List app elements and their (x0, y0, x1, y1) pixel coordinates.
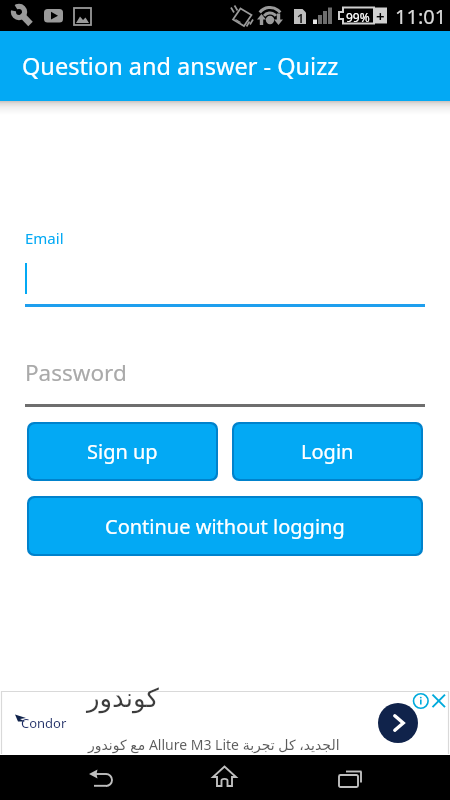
button[interactable]: Back (62, 755, 137, 800)
staticText: كوندور (87, 683, 159, 713)
staticText: Sign up (87, 438, 158, 465)
staticText: مع كوندور Allure M3 Lite الجديد، كل تجرب… (88, 735, 340, 754)
button[interactable]: Close ad (430, 692, 448, 710)
button[interactable]: Sign up (29, 424, 216, 479)
button[interactable] (1, 691, 449, 754)
button[interactable]: Home (187, 755, 262, 800)
button[interactable]: Continue without logging (29, 498, 421, 554)
button[interactable]: Ad information (412, 692, 430, 710)
staticText: Login (301, 438, 354, 465)
staticText: Continue without logging (105, 513, 345, 540)
staticText: 1 (297, 10, 304, 26)
staticText: Question and answer - Quizz (22, 50, 339, 82)
staticText: Condor (21, 714, 67, 732)
staticText: 11:01 (395, 3, 447, 30)
button[interactable]: Open advertisement (378, 703, 418, 743)
button[interactable]: Login (234, 424, 421, 479)
staticText: Password (25, 357, 127, 388)
button[interactable]: Recent apps (313, 755, 388, 800)
staticText: + (376, 6, 385, 26)
staticText: Email (25, 228, 64, 248)
staticText: 99% (346, 9, 370, 25)
